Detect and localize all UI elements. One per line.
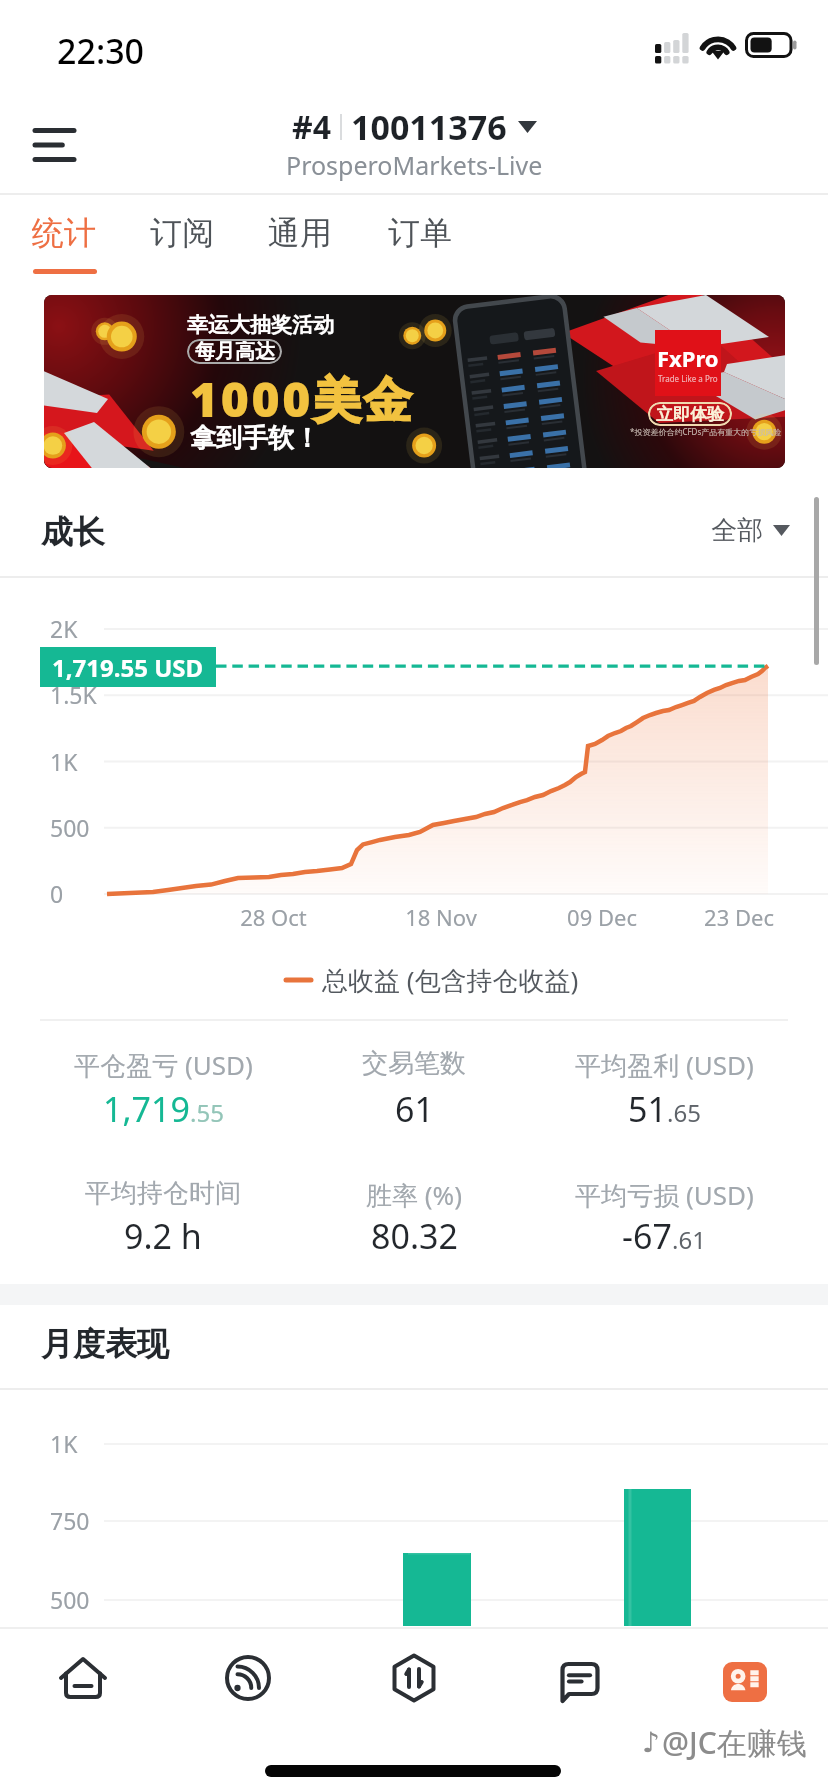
- staticText: 交易笔数: [362, 1047, 466, 1080]
- button[interactable]: Home: [1, 1636, 165, 1720]
- staticText: 1000美金: [190, 366, 415, 432]
- staticText: 统计: [32, 213, 96, 253]
- staticText: 胜率 (%): [366, 1177, 462, 1213]
- staticText: 750: [50, 1505, 90, 1536]
- button[interactable]: Promotion banner: [44, 295, 785, 468]
- staticText: -67: [622, 1213, 672, 1259]
- staticText: 1K: [50, 746, 78, 777]
- staticText: 立即体验: [656, 404, 724, 425]
- staticText: 幸运大抽奖活动: [187, 312, 334, 338]
- staticText: *投资差价合约CFDs产品有重大的亏损风险: [630, 426, 782, 437]
- staticText: 22:30: [57, 28, 145, 74]
- staticText: 平仓盈亏 (USD): [74, 1047, 253, 1083]
- staticText: 0: [50, 878, 64, 909]
- staticText: 28 Oct: [240, 902, 307, 932]
- staticText: 1,719.55 USD: [52, 651, 204, 684]
- staticText: 1.5K: [50, 679, 97, 710]
- staticText: 1,719: [103, 1086, 190, 1132]
- staticText: 每月高达: [195, 339, 275, 364]
- staticText: 月度表现: [41, 1324, 169, 1364]
- staticText: 23 Dec: [704, 902, 774, 932]
- button[interactable]: 订单: [370, 195, 470, 287]
- button[interactable]: 统计: [14, 195, 114, 287]
- staticText: 500: [50, 812, 90, 843]
- staticText: 61: [395, 1086, 434, 1132]
- staticText: 500: [50, 1584, 90, 1615]
- staticText: 51: [628, 1086, 667, 1132]
- staticText: .55: [190, 1096, 224, 1129]
- button[interactable]: Profile: [663, 1636, 827, 1720]
- staticText: 订阅: [150, 213, 214, 253]
- staticText: .65: [667, 1096, 701, 1129]
- button[interactable]: Trade: [332, 1636, 496, 1720]
- staticText: 1K: [50, 1428, 78, 1459]
- staticText: 平均亏损 (USD): [575, 1177, 754, 1213]
- staticText: 成长: [41, 512, 105, 552]
- staticText: 通用: [268, 213, 332, 253]
- button[interactable]: 订阅: [132, 195, 232, 287]
- staticText: 平均持仓时间: [85, 1177, 241, 1210]
- button[interactable]: Messages: [498, 1636, 662, 1720]
- staticText: 9.2 h: [124, 1213, 202, 1259]
- button[interactable]: 全部: [711, 514, 790, 547]
- staticText: ♪: [642, 1726, 660, 1759]
- staticText: 平均盈利 (USD): [575, 1047, 754, 1083]
- staticText: FxPro: [657, 343, 719, 373]
- staticText: Trade Like a Pro: [658, 373, 718, 384]
- staticText: 18 Nov: [405, 902, 477, 932]
- button[interactable]: Signals: [166, 1636, 330, 1720]
- staticText: ProsperoMarkets-Live: [286, 148, 543, 182]
- button[interactable]: 通用: [250, 195, 350, 287]
- staticText: 拿到手软！: [190, 422, 320, 455]
- staticText: 全部: [711, 514, 763, 547]
- staticText: 订单: [388, 213, 452, 253]
- staticText: @JC在赚钱: [662, 1722, 807, 1763]
- staticText: 10011376: [351, 104, 507, 150]
- staticText: 80.32: [371, 1213, 458, 1259]
- staticText: .61: [672, 1223, 706, 1256]
- staticText: 2K: [50, 613, 78, 644]
- staticText: #4: [292, 105, 331, 149]
- button[interactable]: Menu: [20, 111, 88, 179]
- staticText: 总收益 (包含持仓收益): [322, 962, 579, 998]
- staticText: 09 Dec: [567, 902, 637, 932]
